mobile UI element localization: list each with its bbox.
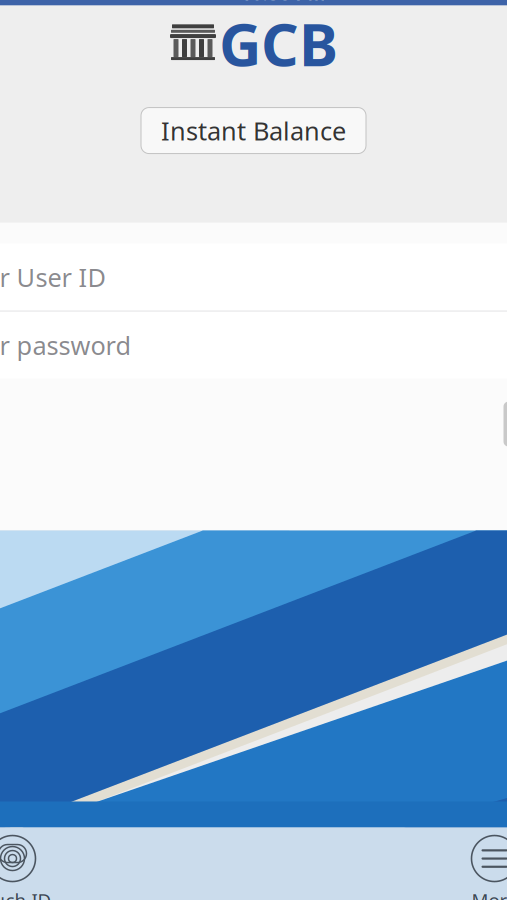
button[interactable]: Instant Balance xyxy=(141,108,366,154)
staticText: 10:38 PM xyxy=(240,0,326,6)
button[interactable]: Please enter your password xyxy=(0,312,507,379)
button[interactable]: More xyxy=(253,828,507,900)
staticText: Please enter your User ID xyxy=(0,260,105,294)
button[interactable]: Log In xyxy=(503,402,507,447)
staticText: Touch ID xyxy=(0,887,51,900)
button[interactable]: Touch ID xyxy=(0,828,253,900)
staticText: More xyxy=(471,887,507,900)
staticText: Please enter your password xyxy=(0,328,131,362)
staticText: GCB xyxy=(219,5,338,82)
staticText: Instant Balance xyxy=(161,114,346,147)
button[interactable]: Please enter your User ID xyxy=(0,244,507,311)
